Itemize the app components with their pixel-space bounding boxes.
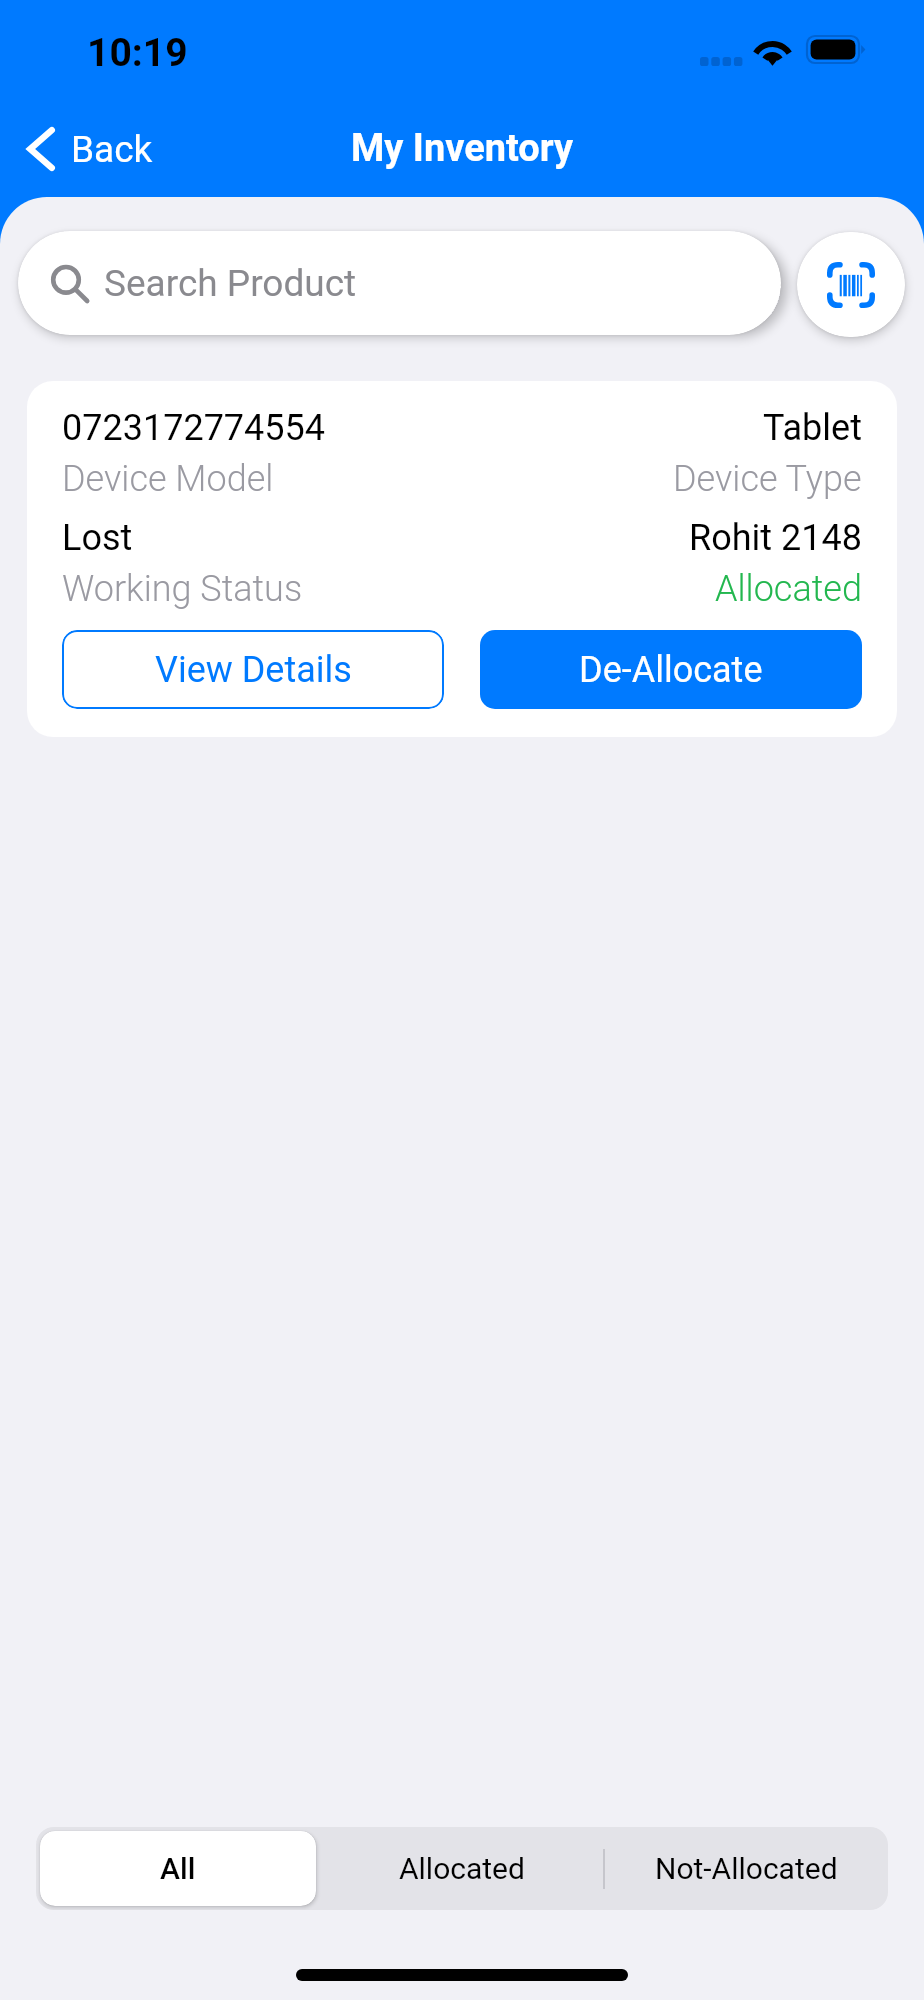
button[interactable]: All	[40, 1831, 316, 1906]
staticText: Rohit 2148	[689, 517, 862, 559]
staticText: De-Allocate	[579, 649, 763, 691]
staticText: 10:19	[87, 30, 188, 76]
staticText: Search Product	[104, 262, 357, 305]
staticText: Tablet	[763, 407, 862, 449]
staticText: Back	[71, 128, 153, 171]
button[interactable]: Allocated	[320, 1827, 603, 1910]
button[interactable]: Back	[0, 119, 169, 179]
staticText: Not-Allocated	[655, 1851, 838, 1886]
staticText: All	[160, 1851, 196, 1886]
staticText: Working Status	[62, 568, 303, 610]
staticText: Allocated	[715, 568, 862, 610]
staticText: 0723172774554	[62, 407, 326, 449]
button[interactable]: Scan barcode	[797, 232, 905, 337]
button[interactable]: 0723172774554	[27, 381, 897, 737]
staticText: Lost	[62, 517, 133, 559]
staticText: Device Model	[62, 458, 274, 500]
staticText: My Inventory	[351, 126, 574, 171]
staticText: Device Type	[673, 458, 862, 500]
button[interactable]: Search Product	[18, 231, 781, 335]
button[interactable]: View Details	[62, 630, 444, 709]
staticText: Allocated	[399, 1851, 525, 1886]
staticText: View Details	[155, 649, 352, 691]
button[interactable]: Not-Allocated	[605, 1827, 888, 1910]
button[interactable]: De-Allocate	[480, 630, 862, 709]
